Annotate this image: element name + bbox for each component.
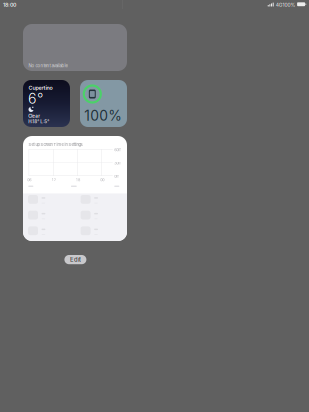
button[interactable]: 100%	[80, 80, 127, 127]
button[interactable]: No content available	[23, 24, 127, 71]
staticText: 06	[27, 178, 31, 182]
staticText: 30m	[114, 161, 121, 165]
staticText: Cupertino	[28, 85, 52, 91]
staticText: H:18° L:5°	[28, 119, 49, 124]
staticText: 4G	[276, 2, 283, 8]
staticText: 12	[52, 178, 56, 182]
staticText: 00	[100, 178, 104, 182]
staticText: Clear	[28, 113, 40, 119]
staticText: 18	[76, 178, 80, 182]
staticText: No content available	[28, 63, 67, 68]
staticText: 100%	[282, 2, 295, 8]
staticText: 6°	[28, 90, 43, 107]
staticText: Edit	[70, 256, 81, 263]
button[interactable]: Cupertino	[23, 80, 70, 127]
staticText: 60m	[114, 148, 121, 152]
staticText: 18:00	[3, 2, 16, 8]
staticText: Set up Screen Time in Settings.	[28, 142, 83, 147]
button[interactable]: Set up Screen Time in Settings.	[23, 136, 127, 241]
staticText: 0m	[114, 174, 119, 179]
button[interactable]: Edit	[64, 255, 86, 264]
staticText: 100%	[84, 107, 122, 124]
